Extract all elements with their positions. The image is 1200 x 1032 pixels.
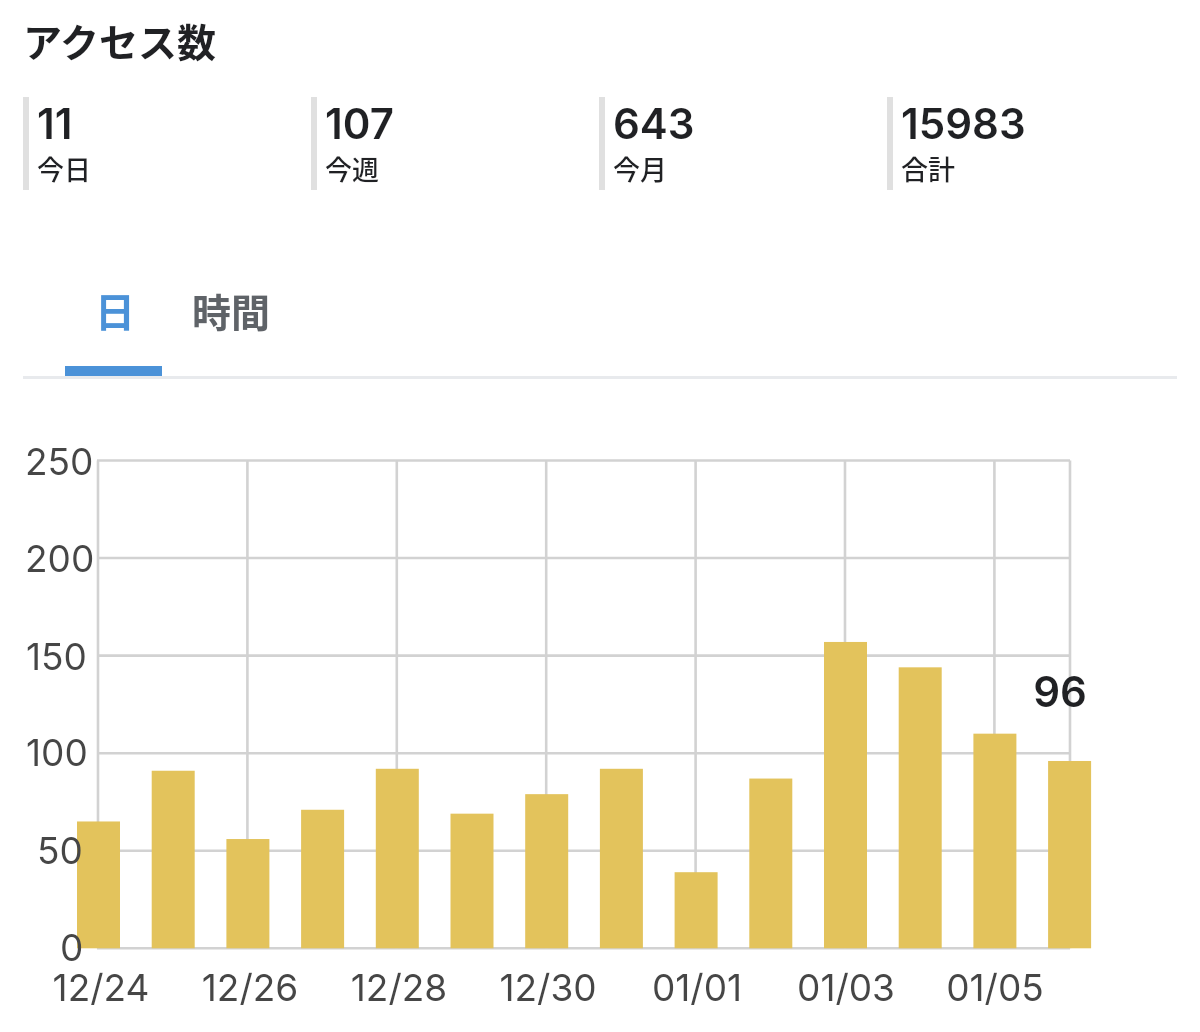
staticText: 11 xyxy=(37,98,73,149)
staticText: 12/28 xyxy=(324,965,474,1010)
staticText: 今週 xyxy=(325,149,379,188)
staticText: 12/26 xyxy=(175,965,325,1010)
staticText: 今月 xyxy=(613,149,667,188)
staticText: アクセス数 xyxy=(23,12,217,68)
staticText: 0 xyxy=(60,925,84,970)
staticText: 250 xyxy=(25,439,94,484)
staticText: 15983 xyxy=(901,98,1026,149)
staticText: 時間 xyxy=(192,282,271,338)
staticText: 12/30 xyxy=(473,965,623,1010)
staticText: 01/01 xyxy=(622,965,772,1010)
staticText: 100 xyxy=(26,730,88,775)
button[interactable]: 時間 xyxy=(165,279,298,341)
staticText: 150 xyxy=(26,634,87,679)
staticText: 107 xyxy=(325,98,394,149)
button[interactable]: 日 xyxy=(65,279,165,341)
staticText: 合計 xyxy=(901,149,955,188)
staticText: 今日 xyxy=(37,149,91,188)
staticText: 200 xyxy=(25,536,95,581)
staticText: 643 xyxy=(613,98,695,149)
staticText: 日 xyxy=(95,281,135,339)
staticText: 50 xyxy=(37,828,83,873)
staticText: 96 xyxy=(985,666,1135,717)
staticText: 01/03 xyxy=(771,965,921,1010)
staticText: 01/05 xyxy=(920,965,1070,1010)
staticText: 12/24 xyxy=(26,965,176,1010)
